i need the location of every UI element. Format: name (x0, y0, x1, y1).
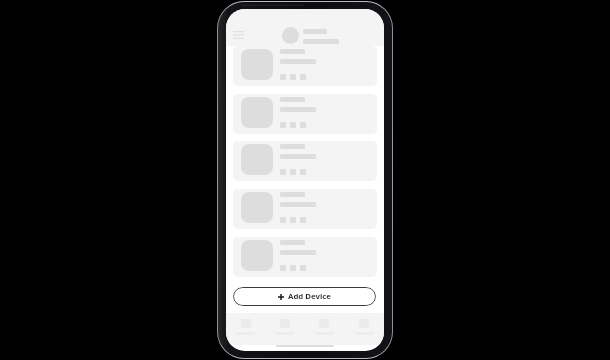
staticText: Add Device (288, 291, 331, 302)
button[interactable] (233, 189, 377, 229)
button[interactable]: Tab 2 (265, 319, 304, 339)
button[interactable] (233, 46, 377, 86)
button[interactable] (233, 237, 377, 277)
button[interactable]: Add Device (233, 287, 376, 306)
button[interactable]: Tab 3 (304, 319, 344, 339)
button[interactable]: Tab 4 (344, 319, 384, 339)
button[interactable]: Tab 1 (226, 319, 265, 339)
button[interactable]: Menu (228, 27, 248, 43)
button[interactable] (233, 94, 377, 134)
button[interactable] (233, 141, 377, 181)
